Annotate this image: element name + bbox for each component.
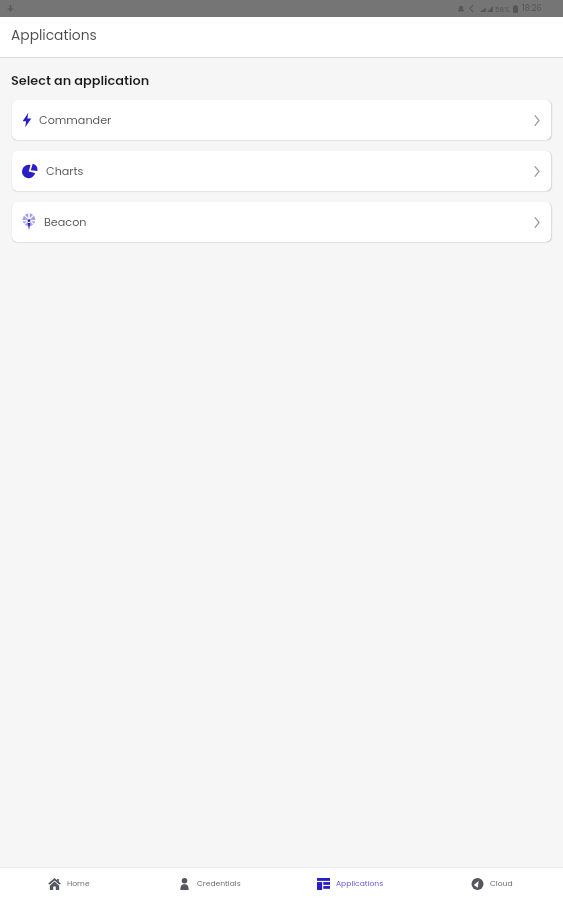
staticText: Charts bbox=[46, 163, 84, 179]
staticText: Commander bbox=[39, 112, 112, 128]
staticText: Applications bbox=[336, 878, 384, 889]
staticText: Applications bbox=[11, 26, 97, 45]
staticText: Credentials bbox=[197, 878, 241, 889]
staticText: Home bbox=[67, 878, 90, 889]
staticText: Beacon bbox=[44, 214, 87, 230]
button[interactable]: Applications bbox=[281, 867, 422, 900]
button[interactable]: Beacon bbox=[12, 202, 551, 242]
staticText: Cloud bbox=[490, 878, 513, 889]
button[interactable]: Commander bbox=[12, 100, 551, 140]
staticText: Select an application bbox=[11, 72, 150, 90]
button[interactable]: Credentials bbox=[140, 867, 281, 900]
button[interactable]: Cloud bbox=[422, 867, 563, 900]
staticText: 58% bbox=[495, 4, 510, 14]
button[interactable]: Home bbox=[0, 867, 140, 900]
button[interactable]: Charts bbox=[12, 151, 551, 191]
staticText: 18:26 bbox=[522, 3, 542, 14]
